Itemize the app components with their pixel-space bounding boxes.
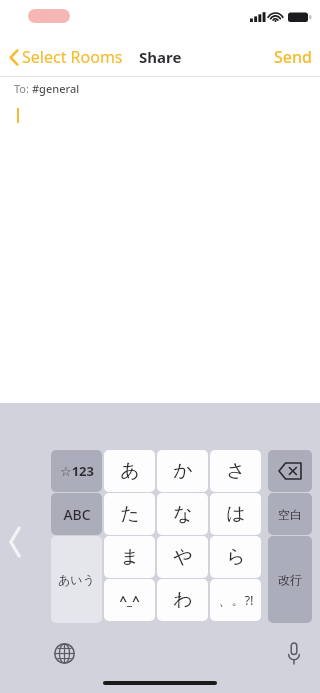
button[interactable]: Send <box>268 42 312 72</box>
button[interactable]: わ <box>157 579 208 621</box>
button[interactable]: な <box>157 493 208 535</box>
staticText: は <box>226 502 246 526</box>
button[interactable]: 改行 <box>268 536 312 623</box>
staticText: あ <box>120 459 140 483</box>
button[interactable]: ま <box>104 536 155 578</box>
button[interactable]: Select Rooms <box>8 46 123 68</box>
staticText: 、。?! <box>218 591 254 609</box>
staticText: To: <box>14 81 32 96</box>
button[interactable]: ^_^ <box>104 579 155 621</box>
staticText: ^_^ <box>119 591 140 609</box>
button[interactable]: Dictation <box>278 637 310 669</box>
staticText: #general <box>32 81 80 96</box>
staticText: さ <box>226 459 246 483</box>
button[interactable]: あ <box>104 450 155 492</box>
staticText: Send <box>274 46 312 68</box>
staticText: 空白 <box>278 507 302 522</box>
staticText: ら <box>226 545 246 569</box>
staticText: ま <box>120 545 140 569</box>
button[interactable]: や <box>157 536 208 578</box>
staticText: Share <box>139 47 182 67</box>
button[interactable]: あいう <box>51 536 102 623</box>
button[interactable]: ☆123 <box>51 450 102 492</box>
button[interactable]: た <box>104 493 155 535</box>
staticText: ABC <box>63 505 91 524</box>
staticText: 改行 <box>278 572 302 587</box>
staticText: あいう <box>58 572 95 587</box>
staticText: な <box>173 502 193 526</box>
button[interactable]: 、。?! <box>210 579 261 621</box>
staticText: か <box>173 459 193 483</box>
staticText: や <box>173 545 193 569</box>
staticText: ☆123 <box>60 462 94 480</box>
staticText: わ <box>173 588 193 612</box>
button[interactable]: ら <box>210 536 261 578</box>
staticText: た <box>120 502 140 526</box>
staticText: Select Rooms <box>22 46 123 68</box>
button[interactable]: は <box>210 493 261 535</box>
button[interactable]: さ <box>210 450 261 492</box>
button[interactable]: 空白 <box>268 493 312 535</box>
button[interactable]: Delete <box>268 450 312 492</box>
button[interactable]: Change keyboard <box>48 637 80 669</box>
button[interactable]: ABC <box>51 493 102 535</box>
button[interactable]: か <box>157 450 208 492</box>
